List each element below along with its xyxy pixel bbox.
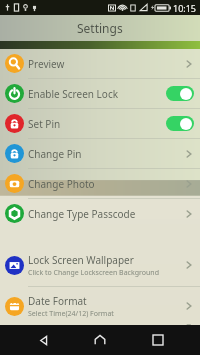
staticText: Change Pin (28, 147, 82, 161)
button[interactable]: Back (28, 325, 58, 355)
staticText: Date Format (28, 294, 87, 308)
staticText: Change Type Passcode (28, 207, 136, 221)
button[interactable]: Date Format (0, 287, 200, 325)
staticText: Preview (28, 57, 65, 71)
staticText: Lock Screen Wallpaper (28, 253, 134, 267)
button[interactable]: Preview (0, 49, 200, 78)
staticText: Set Pin (28, 117, 61, 131)
button[interactable]: Enable Screen Lock (0, 79, 200, 108)
button[interactable]: Lock Screen Wallpaper (0, 244, 200, 286)
staticText: Select Time(24/12) Format (28, 309, 114, 319)
button[interactable]: Toggle (166, 116, 194, 131)
button[interactable]: Change Pin (0, 139, 200, 168)
button[interactable]: Recents (143, 325, 173, 355)
button[interactable]: Change Photo (0, 169, 200, 198)
button[interactable]: Change Type Passcode (0, 199, 200, 228)
staticText: 10:15 (173, 2, 197, 14)
staticText: Settings (77, 20, 123, 36)
button[interactable]: Toggle (166, 86, 194, 101)
staticText: Click to Change Lockscreen Background (28, 268, 159, 278)
button[interactable]: Set Pin (0, 109, 200, 138)
staticText: Change Photo (28, 177, 95, 191)
staticText: Enable Screen Lock (28, 87, 119, 101)
button[interactable]: Home (85, 325, 115, 355)
